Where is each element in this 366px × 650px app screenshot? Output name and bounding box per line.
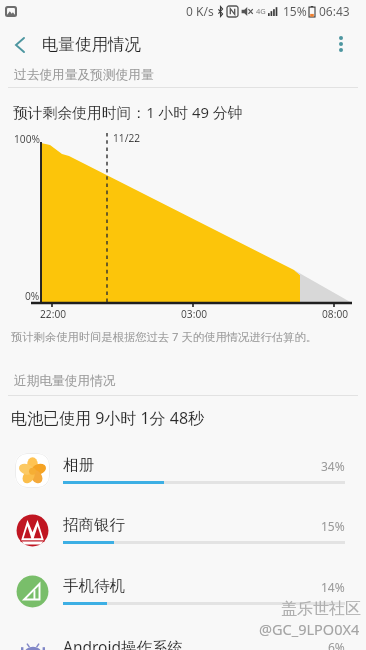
staticText: 03:00: [181, 307, 208, 321]
staticText: 100%: [14, 132, 40, 146]
staticText: 6%: [328, 639, 345, 650]
staticText: 过去使用量及预测使用量: [14, 67, 154, 83]
staticText: 近期电量使用情况: [14, 373, 116, 389]
staticText: 相册: [63, 455, 94, 475]
button[interactable]: More options: [323, 26, 359, 62]
staticText: 招商银行: [63, 515, 125, 535]
staticText: 15%: [321, 518, 345, 534]
button[interactable]: Back: [0, 27, 40, 63]
staticText: 11/22: [113, 131, 141, 145]
staticText: 盖乐世社区: [281, 599, 361, 619]
staticText: Android操作系统: [63, 636, 184, 650]
staticText: 0 K/s: [186, 3, 214, 19]
staticText: 4G: [256, 6, 266, 16]
staticText: 34%: [321, 458, 345, 474]
button[interactable]: 相册: [0, 443, 366, 503]
button[interactable]: 手机待机: [0, 564, 366, 624]
staticText: 06:43: [319, 3, 350, 19]
staticText: 08:00: [322, 307, 349, 321]
staticText: 预计剩余使用时间是根据您过去 7 天的使用情况进行估算的。: [11, 329, 318, 344]
staticText: 手机待机: [63, 576, 125, 596]
staticText: 15%: [283, 3, 307, 19]
staticText: 14%: [321, 579, 345, 595]
button[interactable]: Android操作系统: [0, 624, 366, 650]
staticText: 0%: [25, 289, 40, 303]
staticText: 电量使用情况: [42, 34, 141, 55]
staticText: @GC_9LPO0X4: [259, 619, 360, 639]
staticText: 电池已使用 9小时 1分 48秒: [11, 407, 205, 429]
staticText: 22:00: [40, 307, 67, 321]
staticText: 预计剩余使用时间：1 小时 49 分钟: [13, 102, 243, 122]
button[interactable]: 招商银行: [0, 503, 366, 563]
